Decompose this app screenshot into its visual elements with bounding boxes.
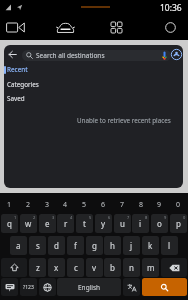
staticText: Search all destinations [36,51,105,60]
staticText: 1 [7,200,12,210]
button[interactable]: Saved [4,93,50,104]
staticText: p [176,218,181,229]
button[interactable]: Search all destinations [22,50,171,61]
button[interactable]: q [1,214,18,233]
button[interactable]: English [57,278,121,296]
button[interactable]: Video [3,17,28,38]
staticText: Unable to retrieve recent places [77,116,171,125]
staticText: q [7,218,12,229]
staticText: 8 [139,200,144,210]
staticText: i [139,218,142,229]
button[interactable]: k [142,236,159,255]
button[interactable]: Backspace [161,258,187,277]
staticText: 5 [82,200,87,210]
button[interactable]: 3 [38,196,57,214]
button[interactable]: i [132,214,149,233]
button[interactable]: f [67,236,84,255]
button[interactable]: z [29,258,46,277]
button[interactable]: j [123,236,140,255]
staticText: f [74,240,77,251]
button[interactable]: Car [54,17,77,38]
staticText: 4 [70,215,73,220]
staticText: a [16,240,21,251]
staticText: English [78,283,101,292]
staticText: r [64,218,68,229]
button[interactable]: Shift [1,258,27,277]
button[interactable]: l [161,236,178,255]
button[interactable]: Translate [123,278,140,296]
staticText: 0 [183,215,186,220]
button[interactable]: x [48,258,65,277]
button[interactable]: 1 [0,196,19,214]
button[interactable]: 8 [132,196,151,214]
button[interactable]: 9 [150,196,169,214]
button[interactable]: 4 [56,196,75,214]
button[interactable]: v [86,258,103,277]
staticText: l [168,240,171,251]
button[interactable]: 7 [113,196,132,214]
button[interactable]: u [114,214,131,233]
button[interactable]: h [104,236,121,255]
button[interactable]: Categories [4,79,50,90]
staticText: e [45,218,50,229]
staticText: m [147,262,155,273]
staticText: n [129,262,134,273]
button[interactable]: Back [5,47,20,62]
button[interactable]: b [104,258,121,277]
staticText: Saved [7,94,25,103]
staticText: 3 [45,200,50,210]
button[interactable]: n [123,258,140,277]
staticText: h [110,240,115,251]
button[interactable]: Language [39,278,56,296]
staticText: 9 [157,200,162,210]
button[interactable]: a [10,236,27,255]
staticText: c [74,262,78,273]
button[interactable]: o [151,214,168,233]
staticText: Recent [7,65,28,74]
button[interactable]: Symbols [20,278,37,296]
staticText: 9 [164,215,167,220]
staticText: 8 [145,215,148,220]
staticText: 1 [14,215,17,220]
staticText: Categories [7,80,39,89]
staticText: g [92,240,97,251]
button[interactable]: Account [170,48,182,60]
button[interactable]: 2 [19,196,38,214]
button[interactable]: Emoji [1,278,18,296]
staticText: 2 [26,200,31,210]
staticText: 7 [120,200,125,210]
staticText: w [25,218,32,229]
staticText: b [110,262,115,273]
staticText: d [54,240,59,251]
button[interactable]: d [48,236,65,255]
button[interactable]: Search [142,278,187,296]
button[interactable]: r [57,214,74,233]
button[interactable]: Voice search [160,51,169,60]
button[interactable]: 0 [169,196,188,214]
button[interactable]: e [39,214,56,233]
staticText: y [101,218,106,229]
staticText: 0 [176,200,181,210]
button[interactable]: Recent [4,64,50,75]
staticText: 3 [52,215,55,220]
button[interactable]: 5 [75,196,94,214]
button[interactable]: s [29,236,46,255]
button[interactable]: w [20,214,37,233]
staticText: 7 [127,215,130,220]
staticText: k [148,240,153,251]
staticText: 4 [63,200,68,210]
button[interactable]: c [67,258,84,277]
button[interactable]: 6 [94,196,113,214]
staticText: 6 [108,215,111,220]
staticText: 5 [89,215,92,220]
button[interactable]: m [142,258,159,277]
button[interactable]: Home [160,17,181,38]
button[interactable]: g [86,236,103,255]
button[interactable]: t [76,214,93,233]
staticText: 2 [33,215,36,220]
staticText: x [54,262,59,273]
button[interactable]: Apps [106,17,127,38]
button[interactable]: y [95,214,112,233]
staticText: j [130,240,133,251]
button[interactable]: p [170,214,187,233]
